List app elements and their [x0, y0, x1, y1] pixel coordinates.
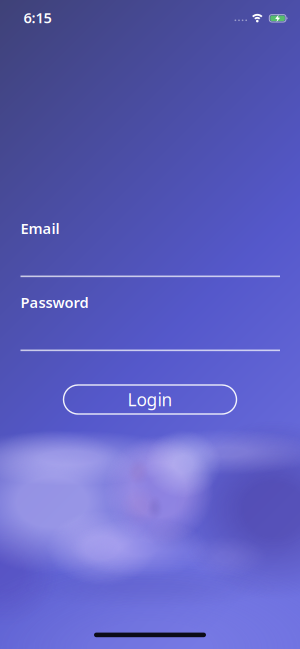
button[interactable]: Login: [63, 385, 236, 414]
staticText: Email: [20, 219, 59, 238]
staticText: Password: [20, 293, 88, 312]
button[interactable]: Email: [20, 219, 280, 277]
staticText: Login: [127, 388, 172, 411]
staticText: 6:15: [23, 8, 51, 27]
button[interactable]: Password: [20, 293, 280, 351]
